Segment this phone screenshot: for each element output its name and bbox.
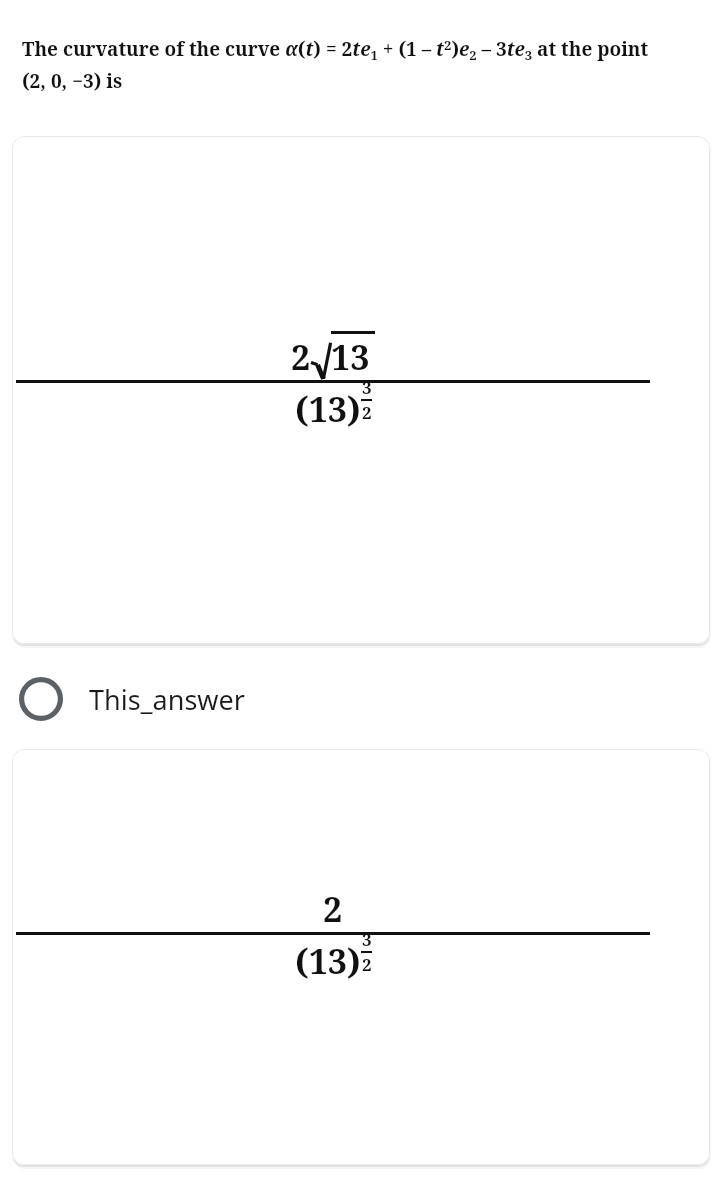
staticText: This_answer xyxy=(89,681,245,718)
staticText: The curvature of the curve α(t) = 2te1 +… xyxy=(22,36,649,64)
staticText: 13 xyxy=(331,334,370,380)
button[interactable]: κ = xyxy=(0,749,722,1169)
staticText: 3 xyxy=(362,928,372,951)
other: Select answer xyxy=(19,677,63,721)
button[interactable]: Select answer xyxy=(0,668,722,730)
staticText: 3 xyxy=(362,376,372,399)
staticText: 2 xyxy=(362,401,372,424)
staticText: (13) xyxy=(295,938,361,984)
staticText: (2, 0, −3) is xyxy=(22,68,123,94)
staticText: 2 xyxy=(291,334,311,380)
button[interactable]: κ = xyxy=(0,136,722,648)
staticText: 2 xyxy=(362,953,372,976)
staticText: (13) xyxy=(295,386,361,432)
staticText: 2 xyxy=(323,886,343,932)
